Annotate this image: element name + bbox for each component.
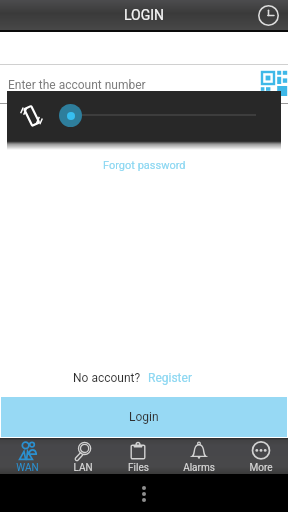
button[interactable]: Alarms: [172, 438, 230, 474]
staticText: Enter the account number: [8, 78, 146, 92]
staticText: LOGIN: [124, 7, 165, 23]
button[interactable]: WAN: [0, 438, 57, 474]
staticText: Login: [129, 410, 159, 424]
button[interactable]: Forgot password: [99, 157, 190, 174]
button[interactable]: Scan QR code: [260, 70, 288, 97]
staticText: LAN: [73, 462, 93, 474]
staticText: WAN: [16, 462, 39, 474]
button[interactable]: Login: [1, 397, 287, 437]
button[interactable]: More: [230, 438, 288, 474]
button[interactable]: Clock: [256, 3, 280, 27]
button[interactable]: LAN: [57, 438, 114, 474]
staticText: Register: [148, 371, 192, 385]
button[interactable]: More options: [136, 480, 152, 508]
staticText: Files: [128, 462, 149, 474]
button[interactable]: Register: [148, 371, 192, 385]
staticText: More: [249, 462, 273, 474]
staticText: No account?: [73, 371, 141, 385]
button[interactable]: Files: [114, 438, 172, 474]
staticText: Forgot password: [103, 159, 186, 172]
staticText: Alarms: [183, 462, 215, 474]
